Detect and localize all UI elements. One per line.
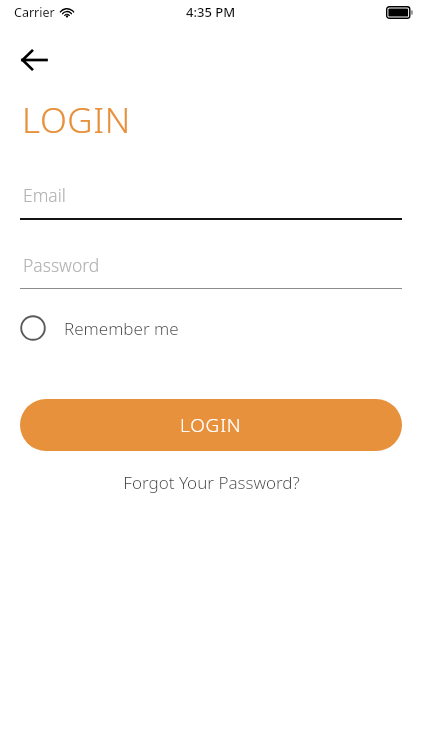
button[interactable]: Email xyxy=(20,180,402,220)
staticText: LOGIN xyxy=(22,96,131,144)
button[interactable]: Password xyxy=(20,250,402,289)
staticText: Password xyxy=(23,253,100,277)
button[interactable]: Back xyxy=(10,36,58,84)
staticText: Remember me xyxy=(64,317,179,340)
button[interactable]: Remember me xyxy=(20,311,179,345)
staticText: Email xyxy=(23,183,66,207)
button[interactable]: Forgot Your Password? xyxy=(115,465,308,500)
staticText: 4:35 PM xyxy=(186,3,236,21)
staticText: Carrier xyxy=(14,4,55,21)
button[interactable]: LOGIN xyxy=(20,399,402,451)
staticText: LOGIN xyxy=(180,412,242,438)
